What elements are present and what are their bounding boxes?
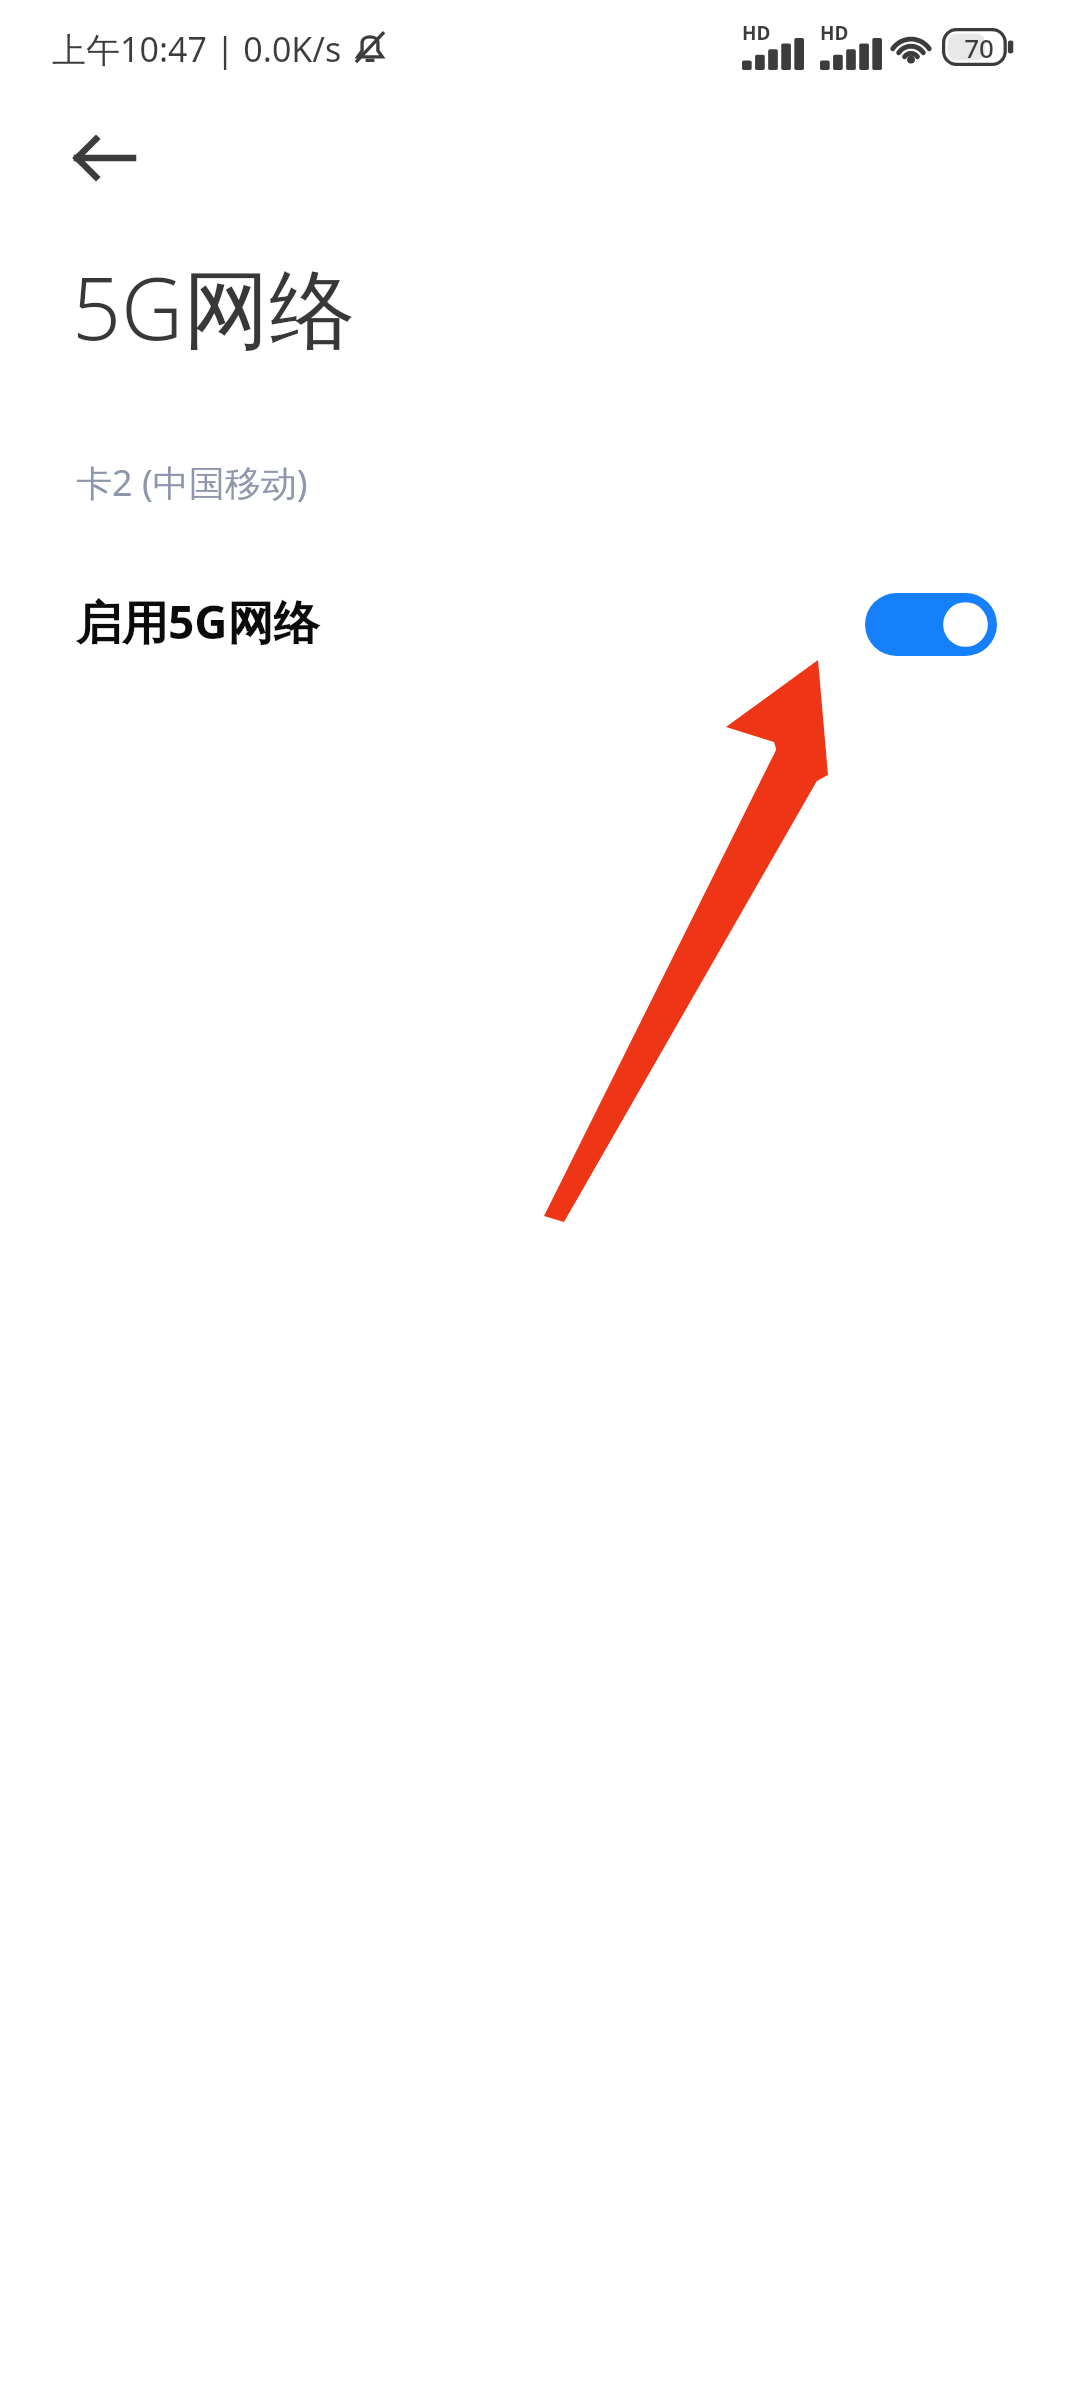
staticText: 启用5G网络 [76, 590, 320, 653]
staticText: 5G网络 [72, 248, 356, 365]
button[interactable]: Back [40, 110, 170, 206]
staticText: 卡2 (中国移动) [76, 458, 308, 507]
staticText: 上午10:47 | 0.0K/s [52, 26, 342, 72]
staticText: HD [820, 20, 849, 46]
button[interactable]: Enable 5G network toggle, on [865, 593, 997, 656]
button[interactable]: 启用5G网络 [0, 560, 1080, 688]
staticText: 70 [950, 30, 1008, 64]
staticText: HD [742, 20, 771, 46]
